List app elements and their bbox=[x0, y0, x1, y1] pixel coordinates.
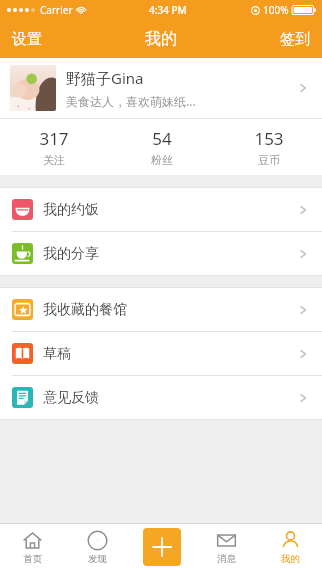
button[interactable]: 我的 bbox=[258, 524, 322, 570]
button[interactable]: 设置 bbox=[0, 20, 54, 58]
staticText: 粉丝 bbox=[151, 153, 173, 167]
button[interactable]: 签到 bbox=[268, 20, 322, 58]
staticText: 消息 bbox=[217, 553, 236, 565]
staticText: 发现 bbox=[88, 553, 107, 565]
button[interactable]: 我的约饭 bbox=[0, 188, 322, 231]
staticText: 317 bbox=[39, 127, 69, 150]
staticText: 我的 bbox=[145, 29, 177, 49]
button[interactable]: 意见反馈 bbox=[0, 376, 322, 419]
staticText: 签到 bbox=[280, 30, 310, 49]
staticText: 我的分享 bbox=[43, 245, 99, 263]
button[interactable]: 新建 bbox=[143, 528, 181, 566]
button[interactable]: 发现 bbox=[65, 524, 130, 570]
staticText: 4:34 PM bbox=[149, 3, 187, 17]
button[interactable]: 首页 bbox=[0, 524, 65, 570]
staticText: 我的 bbox=[281, 553, 300, 565]
staticText: 意见反馈 bbox=[43, 389, 99, 407]
button[interactable]: 153 bbox=[215, 119, 322, 175]
staticText: 首页 bbox=[23, 553, 42, 565]
button[interactable]: 54 bbox=[108, 119, 215, 175]
staticText: 54 bbox=[152, 127, 172, 150]
staticText: 我收藏的餐馆 bbox=[43, 301, 127, 319]
button[interactable]: 我的分享 bbox=[0, 232, 322, 275]
staticText: Carrier bbox=[40, 3, 73, 17]
staticText: 100% bbox=[263, 3, 289, 17]
button[interactable]: 317 bbox=[0, 119, 108, 175]
staticText: 野猫子Gina bbox=[66, 68, 144, 88]
staticText: 我的约饭 bbox=[43, 201, 99, 219]
button[interactable]: 草稿 bbox=[0, 332, 322, 375]
button[interactable]: 野猫子Gina bbox=[0, 58, 322, 118]
staticText: 草稿 bbox=[43, 345, 71, 363]
staticText: 美食达人，喜欢萌妹纸... bbox=[66, 93, 196, 109]
button[interactable]: 我收藏的餐馆 bbox=[0, 288, 322, 331]
staticText: 153 bbox=[254, 127, 284, 150]
button[interactable]: 消息 bbox=[194, 524, 258, 570]
staticText: 豆币 bbox=[258, 153, 280, 167]
staticText: 关注 bbox=[43, 153, 65, 167]
staticText: 设置 bbox=[12, 30, 42, 49]
